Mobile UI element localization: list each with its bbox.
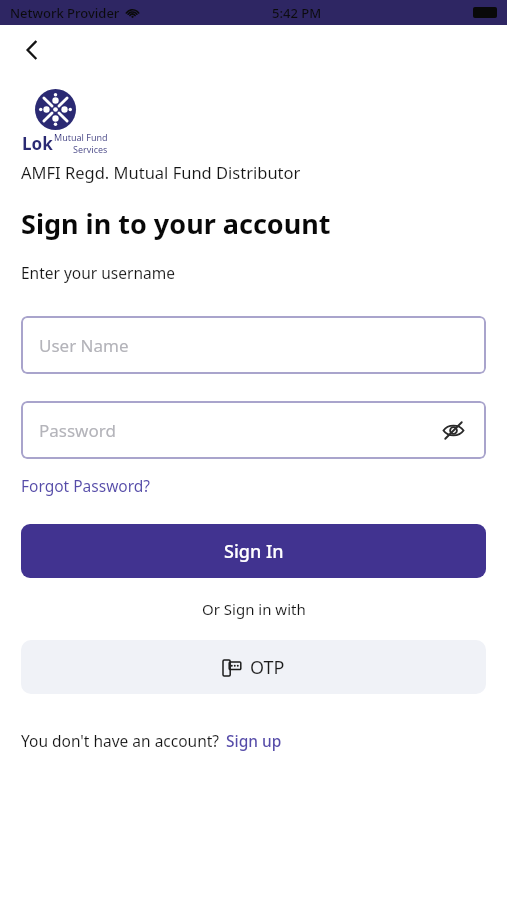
staticText: Forgot Password? (21, 475, 151, 496)
button[interactable]: Show password (438, 415, 468, 445)
button[interactable]: Sign In (21, 524, 486, 578)
button[interactable]: User Name (21, 316, 486, 374)
staticText: User Name (39, 334, 129, 357)
button[interactable]: OTP (21, 640, 486, 694)
staticText: 5:42 PM (272, 4, 322, 22)
staticText: Services (73, 143, 108, 155)
staticText: Sign In (224, 539, 284, 564)
staticText: Enter your username (21, 262, 175, 283)
staticText: Lok (22, 132, 53, 155)
staticText: Or Sign in with (202, 599, 306, 619)
button[interactable]: Sign up (226, 730, 282, 751)
button[interactable]: Password (21, 401, 486, 459)
staticText: You don't have an account? (21, 730, 220, 751)
staticText: OTP (250, 655, 285, 680)
staticText: Network Provider (10, 4, 120, 22)
button[interactable]: Forgot Password? (21, 475, 151, 496)
staticText: Sign up (226, 730, 282, 751)
staticText: Mutual Fund (54, 131, 108, 143)
staticText: Sign in to your account (21, 205, 331, 242)
button[interactable]: Back (12, 30, 52, 70)
staticText: Password (39, 419, 116, 442)
staticText: AMFI Regd. Mutual Fund Distributor (21, 161, 301, 183)
